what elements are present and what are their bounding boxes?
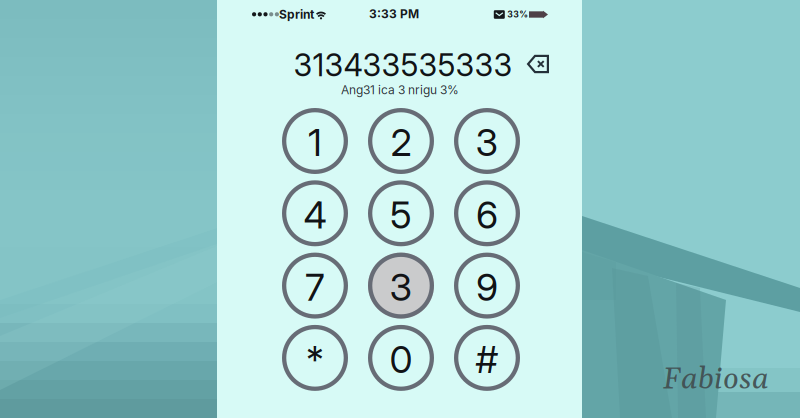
staticText: * [306, 337, 324, 382]
staticText: Ang31 ica 3 nrigu 3% [341, 83, 459, 97]
staticText: 1 [308, 120, 322, 165]
button[interactable]: 5 [368, 180, 434, 246]
button[interactable]: 6 [454, 180, 520, 246]
button[interactable]: 3 [368, 253, 434, 319]
button[interactable]: 3 [454, 108, 520, 174]
staticText: Sprint [279, 7, 314, 21]
button[interactable]: # [454, 325, 520, 391]
button[interactable]: Delete [527, 54, 549, 73]
button[interactable]: * [282, 325, 348, 391]
staticText: 3 [475, 120, 498, 165]
staticText: 0 [389, 337, 412, 382]
staticText: 9 [476, 264, 498, 310]
staticText: # [475, 337, 498, 382]
button[interactable]: 7 [282, 253, 348, 319]
staticText: 2 [390, 120, 411, 165]
staticText: 4 [303, 192, 326, 237]
button[interactable]: 0 [368, 325, 434, 391]
staticText: 6 [476, 192, 498, 237]
staticText: 5 [390, 192, 412, 237]
staticText: 3:33 PM [369, 7, 419, 21]
staticText: Fabiosa [663, 361, 769, 399]
button[interactable]: 9 [454, 253, 520, 319]
staticText: 313433535333 [293, 46, 512, 83]
staticText: 33% [507, 9, 528, 20]
button[interactable]: 1 [282, 108, 348, 174]
staticText: 7 [305, 264, 325, 310]
button[interactable]: 4 [282, 180, 348, 246]
staticText: 3 [389, 264, 412, 310]
button[interactable]: 2 [368, 108, 434, 174]
